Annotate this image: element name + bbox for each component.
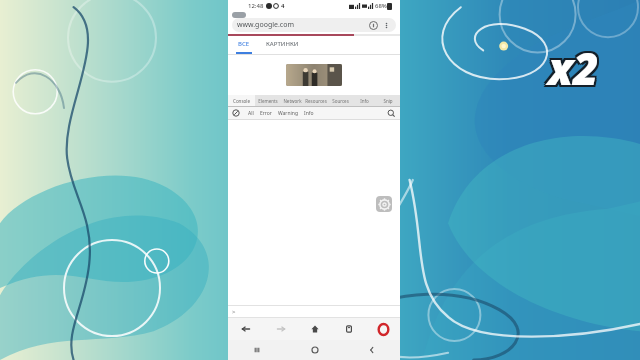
button[interactable]: Settings — [376, 196, 392, 212]
button[interactable]: Tabs — [332, 318, 366, 340]
staticText: x2 — [548, 36, 599, 96]
button[interactable]: Error — [257, 110, 275, 117]
staticText: Error — [260, 110, 272, 117]
button[interactable]: Info — [301, 110, 317, 117]
button[interactable]: КАРТИНКИ — [264, 40, 301, 48]
button[interactable]: Console — [228, 95, 255, 106]
staticText: 12:48 — [248, 2, 264, 10]
button[interactable]: Recents — [228, 340, 286, 360]
staticText: x2 — [546, 40, 597, 100]
staticText: x2 — [548, 38, 599, 98]
staticText: x2 — [550, 40, 601, 100]
button[interactable]: Info — [352, 95, 376, 106]
button[interactable]: Forward — [263, 318, 298, 340]
button[interactable]: Home — [298, 318, 332, 340]
staticText: x2 — [550, 36, 601, 96]
staticText: Sources — [332, 98, 349, 104]
staticText: Network — [283, 98, 302, 104]
staticText: 4 — [281, 2, 285, 10]
staticText: Elements — [258, 98, 278, 104]
button[interactable]: More options — [382, 21, 391, 30]
staticText: Console — [233, 98, 250, 104]
button[interactable]: ВСЕ — [236, 40, 252, 48]
button[interactable]: Search — [387, 109, 396, 118]
button[interactable]: Home — [286, 340, 343, 360]
button[interactable]: Network — [280, 95, 304, 106]
button[interactable]: All — [245, 110, 257, 117]
staticText: Warning — [278, 110, 298, 117]
staticText: Resources — [305, 98, 327, 104]
button[interactable]: Resources — [304, 95, 328, 106]
staticText: Info — [304, 110, 314, 117]
button[interactable]: Back — [343, 340, 400, 360]
staticText: Snip — [383, 98, 393, 104]
staticText: ВСЕ — [238, 40, 250, 48]
button[interactable]: Security info — [369, 21, 378, 30]
button[interactable]: Sources — [328, 95, 352, 106]
staticText: Info — [360, 98, 369, 104]
staticText: x2 — [550, 38, 601, 98]
staticText: x2 — [546, 38, 597, 98]
staticText: 68% — [375, 2, 387, 10]
staticText: > — [232, 308, 236, 316]
button[interactable]: Clear console — [232, 109, 240, 117]
button[interactable] — [286, 64, 342, 86]
button[interactable]: Back — [228, 318, 263, 340]
button[interactable]: Snip — [376, 95, 400, 106]
button[interactable]: Elements — [255, 95, 280, 106]
staticText: www.google.com — [237, 20, 294, 30]
button[interactable]: Warning — [275, 110, 301, 117]
staticText: x2 — [548, 40, 599, 100]
staticText: x2 — [546, 36, 597, 96]
button[interactable]: www.google.com — [232, 18, 396, 32]
staticText: All — [248, 110, 254, 117]
button[interactable]: Opera menu — [366, 318, 400, 340]
staticText: КАРТИНКИ — [266, 40, 299, 48]
